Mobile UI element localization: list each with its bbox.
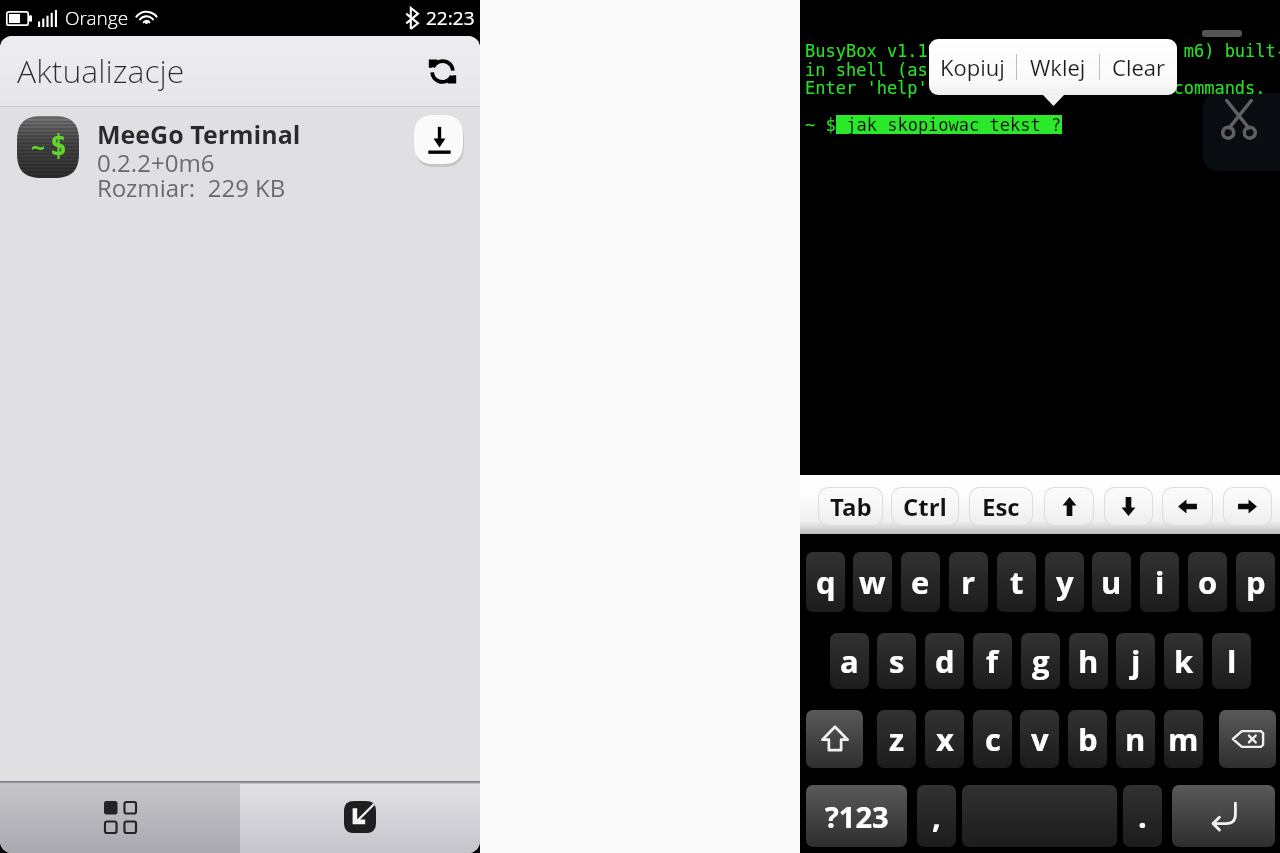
button[interactable]: W lewo bbox=[1163, 488, 1212, 525]
staticText: k bbox=[1174, 640, 1194, 682]
button[interactable]: u bbox=[1092, 552, 1131, 612]
button[interactable]: b bbox=[1068, 710, 1107, 768]
staticText: Kopiuj bbox=[940, 52, 1005, 82]
button[interactable]: h bbox=[1069, 633, 1108, 689]
button[interactable]: p bbox=[1236, 552, 1275, 612]
button[interactable]: v bbox=[1020, 710, 1059, 768]
button[interactable]: y bbox=[1045, 552, 1084, 612]
button[interactable]: Backspace bbox=[1219, 710, 1276, 768]
staticText: , bbox=[932, 795, 941, 837]
button[interactable]: . bbox=[1123, 785, 1162, 847]
staticText: Esc bbox=[982, 490, 1020, 523]
button[interactable]: Wytnij bbox=[1203, 93, 1280, 171]
button[interactable]: ?123 bbox=[806, 785, 907, 847]
button[interactable]: d bbox=[925, 633, 964, 689]
button[interactable]: g bbox=[1021, 633, 1060, 689]
button[interactable]: c bbox=[973, 710, 1012, 768]
button[interactable]: W gore bbox=[1045, 488, 1093, 525]
staticText: MeeGo Terminal bbox=[97, 117, 301, 151]
staticText: w bbox=[859, 561, 886, 603]
button[interactable]: x bbox=[925, 710, 964, 768]
button[interactable]: Ctrl bbox=[892, 488, 958, 525]
staticText: j bbox=[1131, 640, 1141, 682]
staticText: Aktualizacje bbox=[17, 49, 185, 93]
staticText: h bbox=[1078, 640, 1099, 682]
button[interactable]: Clear bbox=[1100, 39, 1177, 95]
button[interactable]: z bbox=[877, 710, 916, 768]
button[interactable]: , bbox=[917, 785, 956, 847]
staticText: m bbox=[1168, 718, 1199, 760]
staticText: p bbox=[1246, 561, 1266, 603]
button[interactable]: l bbox=[1212, 633, 1251, 689]
staticText: Orange bbox=[65, 5, 129, 31]
staticText: g bbox=[1032, 640, 1050, 682]
staticText: ?123 bbox=[825, 797, 889, 836]
staticText: . bbox=[1138, 795, 1147, 837]
staticText: i bbox=[1155, 561, 1165, 603]
staticText: Clear bbox=[1112, 52, 1166, 82]
button[interactable]: Tab bbox=[819, 488, 882, 525]
staticText: v bbox=[1031, 718, 1049, 760]
staticText: Ctrl bbox=[903, 490, 947, 523]
staticText: z bbox=[889, 718, 905, 760]
button[interactable]: m bbox=[1164, 710, 1203, 768]
staticText: b bbox=[1078, 718, 1098, 760]
button[interactable]: n bbox=[1116, 710, 1155, 768]
staticText: a bbox=[840, 640, 859, 682]
button[interactable]: a bbox=[830, 633, 869, 689]
button[interactable]: W prawo bbox=[1224, 488, 1271, 525]
staticText: n bbox=[1125, 718, 1146, 760]
button[interactable]: Wklej bbox=[1017, 39, 1099, 95]
staticText: r bbox=[961, 561, 976, 603]
staticText: BusyBox v1.19.3 (2012-03-27 12:11:02 m6)… bbox=[805, 42, 1280, 61]
staticText: 0.2.2+0m6 bbox=[97, 146, 215, 179]
staticText: 22:23 bbox=[426, 5, 475, 31]
staticText: ~ $ bbox=[805, 116, 836, 135]
staticText: t bbox=[1010, 561, 1024, 603]
button[interactable]: Spacja bbox=[962, 785, 1117, 847]
staticText: d bbox=[935, 640, 955, 682]
staticText: c bbox=[985, 718, 1001, 760]
staticText: Rozmiar: 229 KB bbox=[97, 171, 286, 204]
staticText: o bbox=[1198, 561, 1218, 603]
button[interactable]: e bbox=[901, 552, 940, 612]
button[interactable]: o bbox=[1188, 552, 1227, 612]
staticText: Tab bbox=[830, 490, 872, 523]
button[interactable]: q bbox=[806, 552, 845, 612]
button[interactable]: f bbox=[973, 633, 1012, 689]
button[interactable]: s bbox=[877, 633, 916, 689]
button[interactable]: Odswiez bbox=[417, 46, 467, 96]
staticText: l bbox=[1227, 640, 1237, 682]
staticText: e bbox=[911, 561, 930, 603]
staticText: s bbox=[889, 640, 905, 682]
staticText: f bbox=[986, 640, 999, 682]
staticText: $ bbox=[50, 129, 67, 162]
button[interactable]: t bbox=[997, 552, 1036, 612]
button[interactable]: Pobierz bbox=[413, 114, 465, 166]
button[interactable]: i bbox=[1140, 552, 1179, 612]
button[interactable]: Esc bbox=[970, 488, 1032, 525]
button[interactable]: Instaluj bbox=[240, 781, 480, 853]
button[interactable]: Shift bbox=[806, 710, 863, 768]
button[interactable]: Enter bbox=[1172, 785, 1275, 847]
button[interactable]: w bbox=[853, 552, 892, 612]
button[interactable]: Aplikacje bbox=[0, 781, 240, 853]
staticText: Enter 'help' for a list of built-in comm… bbox=[805, 79, 1266, 98]
staticText: in shell (ash) bbox=[805, 61, 949, 80]
button[interactable]: Kopiuj bbox=[929, 39, 1016, 95]
button[interactable]: k bbox=[1164, 633, 1203, 689]
staticText: jak skopiowac tekst ? bbox=[836, 115, 1062, 134]
staticText: x bbox=[936, 718, 954, 760]
button[interactable]: r bbox=[949, 552, 988, 612]
staticText: ~ bbox=[31, 134, 45, 161]
staticText: Wklej bbox=[1030, 52, 1086, 82]
button[interactable]: W dol bbox=[1105, 488, 1152, 525]
staticText: y bbox=[1056, 561, 1074, 603]
button[interactable]: ~ bbox=[0, 107, 480, 210]
staticText: q bbox=[816, 561, 836, 603]
staticText: u bbox=[1101, 561, 1122, 603]
button[interactable]: j bbox=[1116, 633, 1155, 689]
